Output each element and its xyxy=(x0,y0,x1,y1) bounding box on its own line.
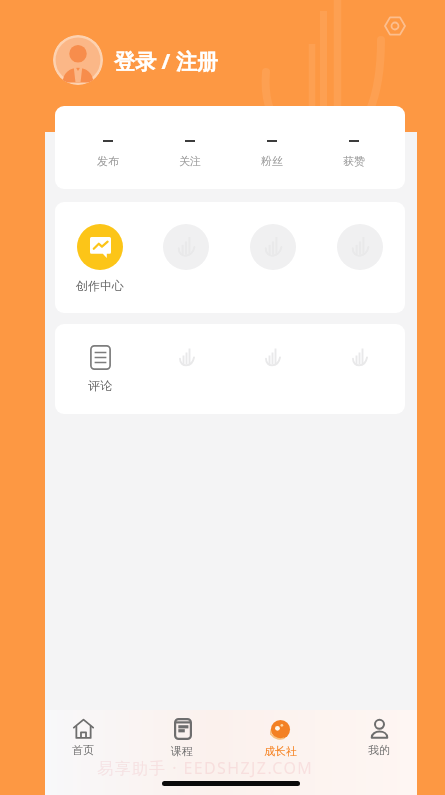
staticText: 成长社 xyxy=(264,744,297,758)
staticText: 关注 xyxy=(179,154,201,168)
button[interactable]: 获赞 xyxy=(313,140,395,168)
button[interactable]: Avatar xyxy=(53,35,103,85)
button[interactable]: Settings xyxy=(382,13,408,39)
staticText: 易享助手 · EEDSHZJZ.COM xyxy=(97,757,314,779)
button[interactable]: 评论 xyxy=(57,345,143,393)
staticText: 课程 xyxy=(171,744,193,758)
button[interactable]: 我的 xyxy=(341,718,417,757)
staticText: 我的 xyxy=(368,743,390,757)
staticText: 发布 xyxy=(97,154,119,168)
staticText: 首页 xyxy=(72,743,94,757)
staticText: 获赞 xyxy=(343,154,365,168)
button[interactable]: 成长社 xyxy=(242,718,318,758)
staticText: 评论 xyxy=(88,378,112,393)
button[interactable]: 创作中心 xyxy=(57,224,143,293)
button[interactable]: 课程 xyxy=(144,718,220,758)
staticText: 创作中心 xyxy=(76,278,124,293)
button[interactable]: 发布 xyxy=(67,140,149,168)
button[interactable]: 首页 xyxy=(45,718,121,757)
button[interactable]: 关注 xyxy=(149,140,231,168)
staticText: 登录 / 注册 xyxy=(114,47,218,76)
button[interactable]: 粉丝 xyxy=(231,140,313,168)
staticText: 粉丝 xyxy=(261,154,283,168)
